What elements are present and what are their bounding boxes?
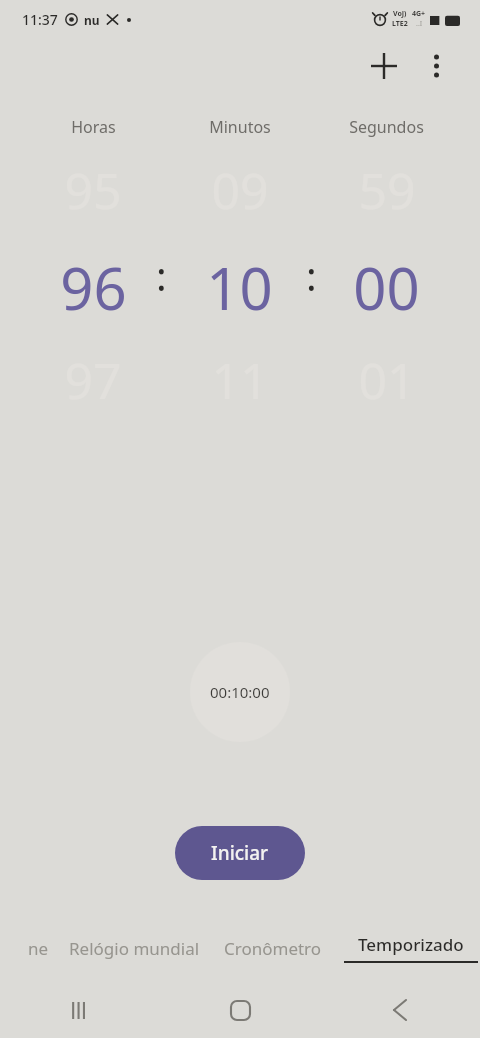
button[interactable]: ne bbox=[26, 929, 51, 968]
staticText: Horas bbox=[71, 116, 116, 138]
staticText: LTE2 bbox=[392, 19, 408, 29]
staticText: 10 bbox=[206, 248, 273, 324]
staticText: VoJ) bbox=[393, 9, 407, 19]
staticText: 4G+ bbox=[412, 9, 426, 19]
button[interactable]: Recents bbox=[0, 982, 160, 1038]
button[interactable]: Temporizado bbox=[342, 933, 480, 963]
staticText: Iniciar bbox=[211, 840, 269, 866]
button[interactable]: 96 bbox=[20, 248, 166, 324]
staticText: : bbox=[306, 248, 317, 302]
button[interactable]: Home bbox=[160, 982, 320, 1038]
staticText: 00:10:00 bbox=[210, 682, 270, 702]
button[interactable]: 10 bbox=[166, 248, 313, 324]
button[interactable]: Cronômetro bbox=[220, 929, 326, 968]
staticText: Minutos bbox=[209, 116, 271, 138]
staticText: : bbox=[156, 248, 167, 302]
staticText: nu bbox=[84, 12, 100, 28]
button[interactable]: Relógio mundial bbox=[65, 929, 204, 968]
button[interactable]: Iniciar bbox=[175, 826, 305, 880]
staticText: 96 bbox=[60, 248, 127, 324]
staticText: Cronômetro bbox=[224, 937, 322, 960]
button[interactable]: Add preset bbox=[360, 42, 408, 90]
button[interactable]: 00 bbox=[313, 248, 460, 324]
staticText: Relógio mundial bbox=[69, 937, 200, 960]
staticText: ..I bbox=[416, 19, 423, 29]
button[interactable]: 00:10:00 bbox=[190, 642, 290, 742]
staticText: ne bbox=[28, 937, 49, 960]
staticText: Segundos bbox=[349, 116, 424, 138]
staticText: 00 bbox=[353, 248, 420, 324]
button[interactable]: More options bbox=[412, 42, 460, 90]
button[interactable]: Back bbox=[320, 982, 480, 1038]
staticText: Temporizado bbox=[358, 933, 464, 956]
staticText: 11:37 bbox=[22, 10, 58, 29]
